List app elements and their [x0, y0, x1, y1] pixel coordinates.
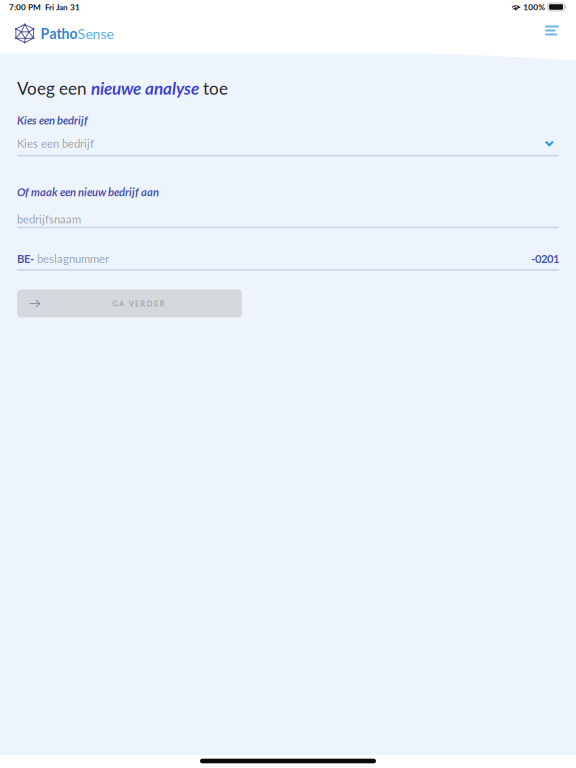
staticText: Of maak een nieuw bedrijf aan — [17, 185, 159, 199]
staticText: 7:00 PM — [9, 2, 41, 12]
staticText: Patho — [40, 25, 77, 42]
staticText: nieuwe analyse — [91, 78, 199, 98]
button[interactable]: Kies een bedrijf — [17, 136, 559, 156]
staticText: Sense — [77, 25, 113, 42]
staticText: beslagnummer — [34, 252, 109, 265]
staticText: GA VERDER — [113, 299, 164, 308]
button[interactable]: PathoSense home — [15, 22, 113, 45]
button[interactable]: GA VERDER — [17, 290, 242, 318]
staticText: Kies een bedrijf — [17, 113, 88, 127]
staticText: 100% — [523, 2, 545, 12]
button[interactable]: Menu — [537, 21, 565, 46]
staticText: Fri Jan 31 — [45, 2, 80, 12]
staticText: Kies een bedrijf — [17, 137, 94, 150]
staticText: toe — [199, 78, 228, 98]
staticText: -0201 — [531, 252, 559, 265]
staticText: Voeg een — [17, 78, 91, 98]
staticText: BE- — [17, 252, 34, 265]
staticText: bedrijfsnaam — [17, 212, 81, 226]
